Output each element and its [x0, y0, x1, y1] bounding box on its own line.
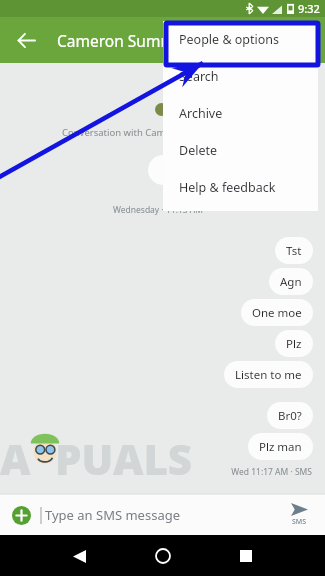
button[interactable]: Br0?: [267, 402, 313, 429]
staticText: Wednesday · 11:13 AM: [113, 204, 203, 216]
staticText: Archive: [179, 105, 223, 122]
button[interactable]: Search: [163, 58, 318, 95]
staticText: SMS: [292, 517, 307, 527]
button[interactable]: Plz: [275, 330, 313, 357]
staticText: Cameron Summ: [57, 30, 175, 51]
staticText: Plz man: [259, 439, 302, 455]
button[interactable]: Help & feedback: [163, 169, 318, 206]
button[interactable]: Tst: [275, 237, 313, 264]
staticText: Help & feedback: [179, 179, 276, 196]
button[interactable]: Agn: [269, 268, 313, 295]
staticText: Search: [179, 68, 219, 85]
staticText: Br0?: [278, 408, 302, 424]
staticText: People & options: [179, 31, 280, 48]
staticText: PUALS: [55, 430, 193, 487]
staticText: 9:32: [298, 1, 320, 16]
button[interactable]: Add attachment: [10, 504, 32, 526]
staticText: Conversation with Came: [62, 126, 171, 139]
staticText: Tst: [286, 243, 302, 259]
button[interactable]: Back: [62, 539, 96, 573]
staticText: Delete: [179, 142, 218, 159]
button[interactable]: Send SMS: [281, 496, 317, 534]
button[interactable]: Archive: [163, 95, 318, 132]
button[interactable]: Type an SMS message: [45, 506, 181, 524]
button[interactable]: Listen to me: [224, 361, 313, 388]
button[interactable]: Delete: [163, 132, 318, 169]
staticText: One moe: [252, 305, 302, 321]
staticText: A: [0, 430, 31, 487]
button[interactable]: Back: [8, 22, 44, 58]
button[interactable]: Recent apps: [229, 539, 263, 573]
staticText: Plz: [286, 336, 302, 352]
button[interactable]: Home: [146, 539, 180, 573]
button[interactable]: One moe: [241, 299, 313, 326]
staticText: Listen to me: [235, 367, 302, 383]
staticText: Agn: [280, 274, 302, 290]
button[interactable]: People & options: [163, 21, 318, 58]
staticText: Wed 11:17 AM · SMS: [0, 466, 312, 478]
button[interactable]: Plz man: [248, 433, 313, 460]
